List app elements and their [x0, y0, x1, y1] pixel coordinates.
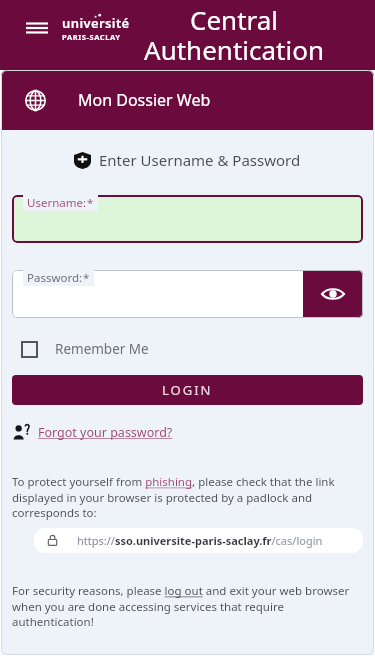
button[interactable]: LOGIN [12, 375, 363, 405]
staticText: université [62, 14, 130, 32]
button[interactable]: Show password [303, 270, 363, 318]
staticText: Password: [27, 270, 83, 286]
staticText: Mon Dossier Web [78, 89, 211, 111]
button[interactable]: Site [1, 70, 374, 130]
staticText: PARIS-SACLAY [62, 32, 121, 42]
staticText: https://sso.universite-paris-saclay.fr/c… [77, 533, 323, 548]
staticText: Forgot your password? [38, 424, 173, 441]
staticText: Central Authentication Service [114, 2, 354, 72]
staticText: * [87, 195, 94, 211]
staticText: * [83, 270, 90, 286]
staticText: To protect yourself from phishing, pleas… [12, 474, 363, 520]
staticText: Username: [27, 195, 87, 211]
button[interactable]: Menu [26, 21, 48, 35]
staticText: Enter Username & Password [99, 150, 301, 170]
staticText: LOGIN [162, 381, 213, 399]
button[interactable]: Remember Me [12, 340, 149, 358]
button[interactable] [12, 195, 363, 243]
button[interactable]: Forgot your password? [12, 423, 173, 441]
staticText: Remember Me [55, 340, 149, 358]
button[interactable]: Show password [12, 270, 363, 318]
other: Site [25, 90, 46, 111]
staticText: For security reasons, please log out and… [12, 583, 363, 629]
